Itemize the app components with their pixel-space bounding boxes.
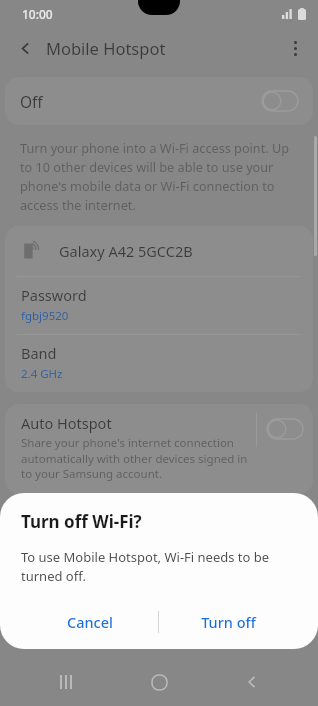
staticText: fgbj9520: [21, 308, 69, 324]
staticText: Off: [20, 91, 262, 112]
staticText: Share your phone's internet connection a…: [21, 435, 248, 481]
button[interactable]: Back: [8, 31, 42, 65]
staticText: To use Mobile Hotspot, Wi-Fi needs to be…: [21, 548, 297, 585]
staticText: Password: [21, 285, 87, 305]
button[interactable]: More options: [278, 31, 312, 65]
staticText: 2.4 GHz: [21, 366, 63, 382]
button[interactable]: Password: [5, 277, 313, 334]
staticText: Auto Hotspot: [21, 413, 112, 433]
staticText: Band: [21, 343, 57, 363]
button[interactable]: Band: [5, 335, 313, 392]
staticText: Mobile Hotspot: [46, 37, 166, 59]
staticText: Galaxy A42 5GCC2B: [59, 241, 193, 261]
staticText: Turn your phone into a Wi-Fi access poin…: [20, 139, 298, 214]
button[interactable]: Off: [5, 77, 313, 125]
button[interactable]: Turn off: [159, 599, 297, 645]
button[interactable]: Recents: [39, 658, 93, 706]
button[interactable]: Galaxy A42 5GCC2B: [5, 226, 313, 276]
staticText: Turn off: [201, 612, 256, 632]
staticText: Turn off Wi-Fi?: [21, 510, 142, 533]
staticText: 10:00: [22, 6, 53, 22]
staticText: Cancel: [67, 612, 113, 632]
button[interactable]: Home: [132, 658, 186, 706]
button[interactable]: Auto Hotspot: [5, 404, 313, 494]
button[interactable]: Back: [225, 658, 279, 706]
button[interactable]: Cancel: [21, 599, 158, 645]
